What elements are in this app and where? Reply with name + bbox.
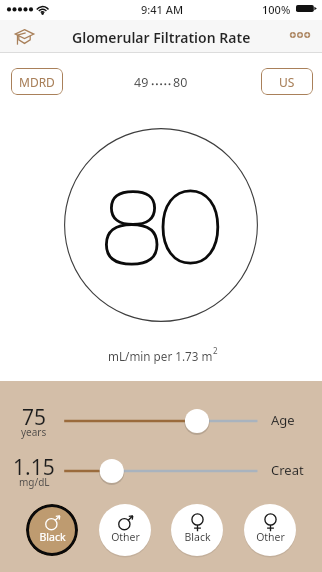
button[interactable]: Black — [171, 504, 223, 556]
staticText: 75 — [22, 403, 47, 432]
button[interactable]: More options — [280, 20, 320, 50]
staticText: Creat — [271, 461, 304, 479]
staticText: 9:41 AM — [141, 2, 184, 17]
staticText: years — [21, 425, 47, 439]
button[interactable]: Other — [99, 504, 151, 556]
button[interactable]: MDRD — [11, 68, 63, 95]
button[interactable]: Learn — [6, 22, 40, 52]
staticText: Black — [184, 530, 211, 544]
staticText: Glomerular Filtration Rate — [72, 28, 251, 47]
button[interactable]: US — [261, 68, 313, 95]
staticText: US — [279, 74, 295, 90]
staticText: mg/dL — [19, 475, 50, 489]
staticText: Age — [271, 411, 295, 429]
staticText: Black — [39, 530, 66, 544]
button[interactable]: Creat — [50, 453, 272, 489]
button[interactable]: Age — [50, 403, 272, 439]
staticText: Other — [111, 530, 140, 544]
staticText: mL/min per 1.73 m — [108, 348, 213, 364]
staticText: MDRD — [19, 74, 55, 90]
staticText: 2 — [213, 345, 218, 356]
staticText: 100% — [262, 2, 291, 17]
staticText: 1.15 — [13, 453, 55, 482]
button[interactable]: Black — [26, 504, 78, 556]
staticText: 80 — [173, 74, 188, 91]
staticText: 49 — [134, 74, 149, 91]
button[interactable]: Other — [244, 504, 296, 556]
staticText: Other — [256, 530, 285, 544]
